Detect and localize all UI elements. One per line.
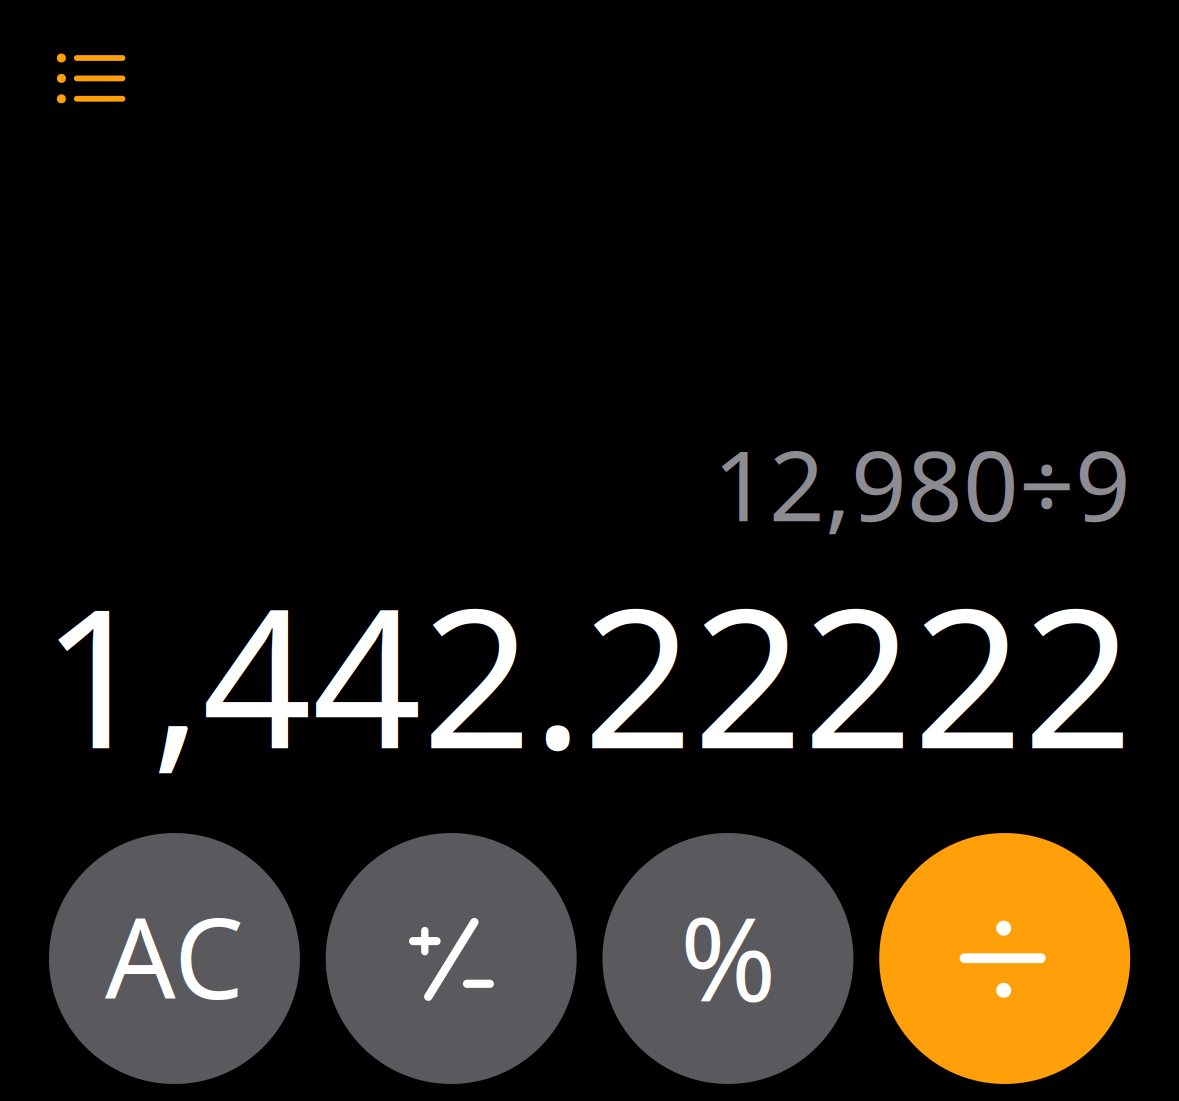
- button[interactable]: Plus Minus: [326, 833, 577, 1084]
- staticText: AC: [105, 883, 244, 1030]
- button[interactable]: Percent: [602, 833, 853, 1084]
- button[interactable]: All Clear: [49, 833, 300, 1084]
- staticText: 1,442.22222: [41, 546, 1133, 801]
- staticText: 12,980÷9: [713, 419, 1131, 548]
- button[interactable]: Divide: [879, 833, 1130, 1084]
- staticText: %: [680, 879, 776, 1033]
- button[interactable]: History: [25, 13, 157, 145]
